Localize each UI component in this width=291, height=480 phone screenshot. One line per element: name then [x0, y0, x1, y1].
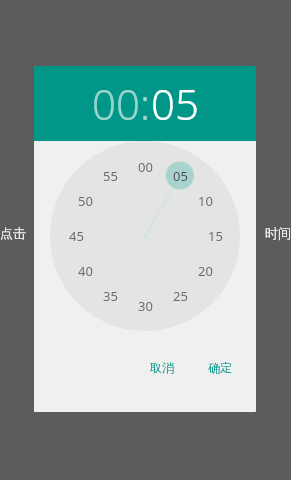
staticText: 10 [198, 192, 213, 210]
staticText: 45 [69, 227, 84, 245]
staticText: 05 [173, 167, 188, 185]
staticText: 55 [103, 167, 118, 185]
button[interactable]: 20 [192, 258, 218, 284]
staticText: 40 [78, 262, 93, 280]
button[interactable]: 55 [97, 163, 123, 189]
staticText: 确定 [208, 360, 232, 375]
button[interactable]: 00 [92, 75, 140, 132]
button[interactable]: 05 [167, 163, 193, 189]
button[interactable]: 45 [63, 223, 89, 249]
staticText: : [140, 75, 151, 132]
staticText: 50 [78, 192, 93, 210]
staticText: 点击 [0, 225, 26, 241]
staticText: 时间 [265, 225, 291, 241]
button[interactable]: Minute clock face [50, 141, 240, 331]
staticText: 20 [198, 262, 213, 280]
staticText: 30 [138, 297, 153, 315]
button[interactable]: 00 [132, 154, 158, 180]
button[interactable]: 25 [167, 283, 193, 309]
staticText: 取消 [150, 360, 174, 375]
button[interactable]: 确定 [198, 356, 242, 379]
button[interactable]: 50 [72, 188, 98, 214]
staticText: 15 [208, 227, 223, 245]
staticText: 00 [138, 158, 153, 176]
button[interactable]: 35 [97, 283, 123, 309]
button[interactable]: 取消 [140, 356, 184, 379]
button[interactable]: 05 [151, 75, 199, 132]
staticText: 25 [173, 287, 188, 305]
staticText: 35 [103, 287, 118, 305]
button[interactable]: 10 [192, 188, 218, 214]
button[interactable]: 15 [202, 223, 228, 249]
button[interactable]: 40 [72, 258, 98, 284]
button[interactable]: 30 [132, 293, 158, 319]
